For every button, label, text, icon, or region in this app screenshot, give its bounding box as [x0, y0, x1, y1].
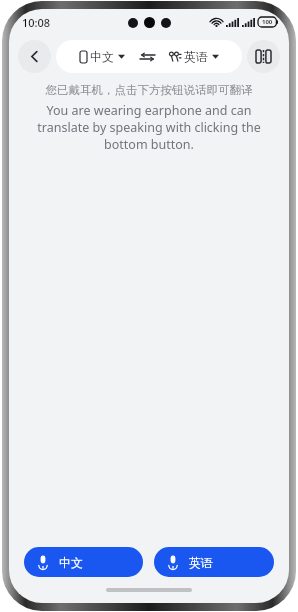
staticText: 10:08	[22, 15, 51, 30]
button[interactable]: 英语	[154, 547, 274, 577]
button[interactable]: 中文	[77, 45, 128, 68]
button[interactable]: Split screen	[247, 40, 280, 73]
button[interactable]: 英语	[166, 45, 222, 68]
staticText: 中文	[59, 555, 83, 570]
staticText: 中文	[90, 49, 114, 64]
staticText: 英语	[184, 49, 208, 64]
button[interactable]: 中文	[24, 547, 143, 577]
staticText: You are wearing earphone and can transla…	[24, 102, 274, 153]
staticText: 您已戴耳机，点击下方按钮说话即可翻译	[19, 83, 279, 97]
button[interactable]: Swap languages	[137, 47, 157, 67]
button[interactable]: Back	[18, 40, 51, 73]
staticText: 100	[262, 18, 273, 26]
staticText: 英语	[189, 555, 213, 570]
